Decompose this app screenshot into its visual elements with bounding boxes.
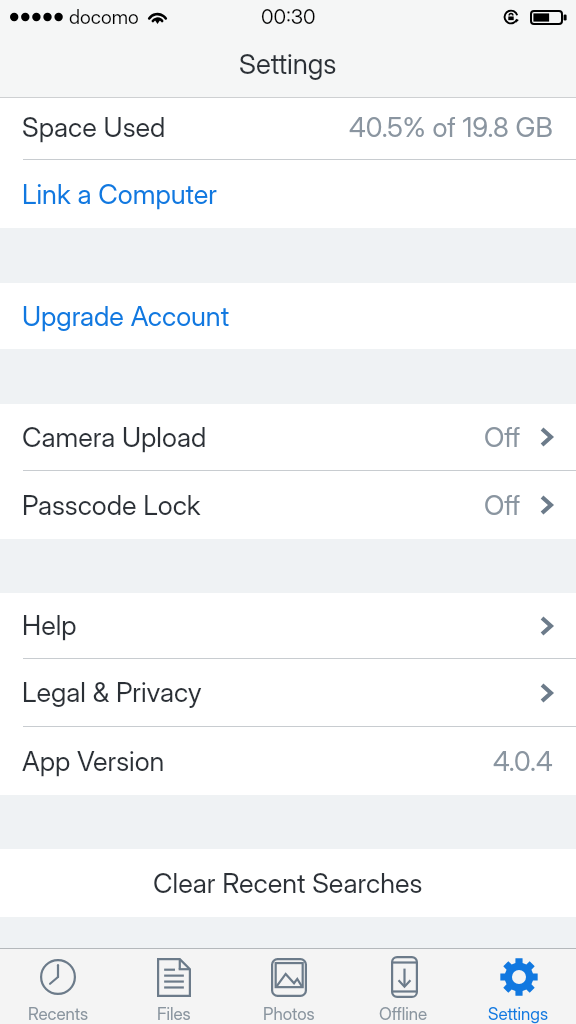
staticText: Help (22, 609, 77, 642)
staticText: 40.5% of 19.8 GB (349, 111, 553, 144)
staticText: Offline (379, 1004, 428, 1024)
staticText: Space Used (22, 111, 166, 144)
button[interactable]: App Version (0, 727, 576, 795)
other: Files (157, 958, 191, 997)
button[interactable]: Camera Upload (0, 404, 576, 471)
staticText: Legal & Privacy (22, 676, 202, 709)
staticText: Camera Upload (22, 421, 207, 454)
button[interactable]: Help (0, 593, 576, 659)
other: Settings (500, 958, 538, 996)
button[interactable]: Link a Computer (0, 160, 576, 228)
button[interactable]: Upgrade Account (0, 283, 576, 349)
staticText: Off (484, 421, 521, 454)
staticText: Upgrade Account (22, 300, 230, 333)
other: Photos (271, 958, 307, 997)
other: Offline (391, 956, 418, 998)
button[interactable]: Recents (0, 948, 116, 1024)
staticText: Clear Recent Searches (153, 867, 423, 900)
button[interactable]: Legal & Privacy (0, 659, 576, 727)
staticText: Recents (28, 1004, 89, 1024)
staticText: Photos (263, 1004, 315, 1024)
button[interactable]: Settings (461, 948, 576, 1024)
staticText: 00:30 (261, 4, 316, 29)
button[interactable]: Space Used (0, 98, 576, 160)
staticText: Off (484, 489, 521, 522)
staticText: Settings (239, 47, 337, 80)
staticText: Files (157, 1004, 191, 1024)
staticText: App Version (22, 745, 165, 778)
button[interactable]: Passcode Lock (0, 471, 576, 539)
staticText: 4.0.4 (493, 745, 553, 778)
button[interactable]: Files (116, 948, 231, 1024)
staticText: Settings (488, 1004, 549, 1024)
button[interactable]: Clear Recent Searches (0, 849, 576, 917)
button[interactable]: Offline (346, 948, 461, 1024)
staticText: Link a Computer (22, 178, 217, 211)
staticText: Passcode Lock (22, 489, 201, 522)
button[interactable]: Photos (231, 948, 346, 1024)
staticText: docomo (69, 5, 139, 29)
other: Recents (40, 959, 76, 995)
